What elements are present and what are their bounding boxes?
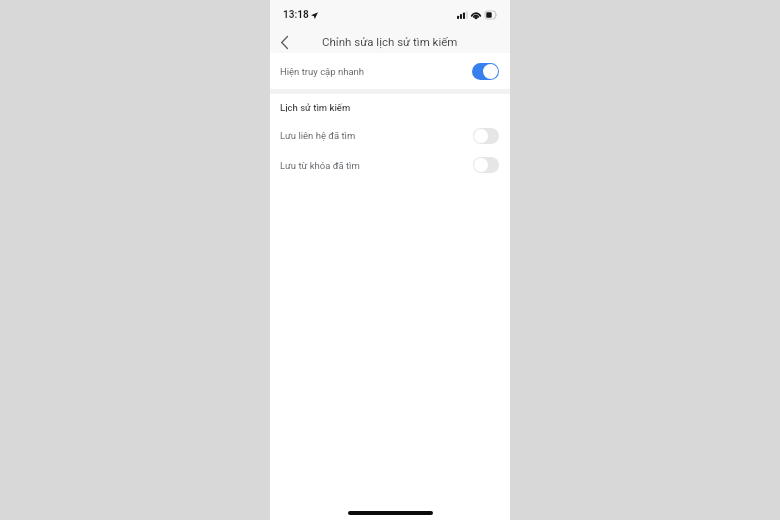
staticText: 13:18 [283, 9, 309, 21]
button[interactable]: Switch off [473, 128, 499, 144]
staticText: Chỉnh sửa lịch sử tìm kiếm [322, 35, 458, 48]
button[interactable]: Switch on [472, 63, 499, 80]
button[interactable]: Back [269, 27, 299, 57]
button[interactable]: Lưu liên hệ đã tìm [270, 121, 510, 150]
staticText: Lịch sử tìm kiếm [280, 102, 351, 113]
staticText: Lưu từ khóa đã tìm [280, 160, 360, 171]
button[interactable]: Switch off [473, 157, 499, 173]
staticText: Lưu liên hệ đã tìm [280, 130, 356, 141]
button[interactable]: Lưu từ khóa đã tìm [270, 150, 510, 180]
button[interactable]: Hiện truy cập nhanh [270, 53, 510, 89]
staticText: Hiện truy cập nhanh [280, 66, 365, 77]
